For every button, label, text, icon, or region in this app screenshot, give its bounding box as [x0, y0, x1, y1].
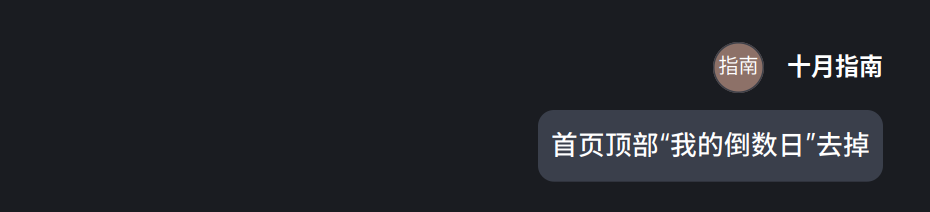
staticText: 首页顶部“我的倒数日”去掉	[551, 124, 870, 162]
staticText: 十月指南	[787, 47, 883, 82]
button[interactable]: 指南	[713, 42, 883, 93]
button[interactable]: 首页顶部“我的倒数日”去掉	[538, 110, 883, 182]
staticText: 指南	[718, 50, 758, 79]
